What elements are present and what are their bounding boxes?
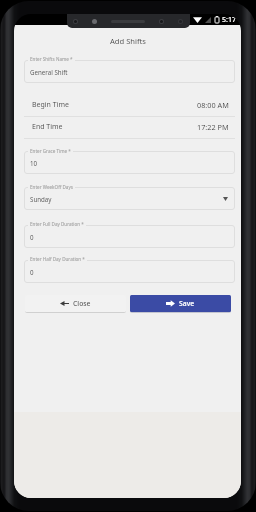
staticText: End Time	[32, 122, 63, 132]
staticText: 17:22 PM	[197, 122, 229, 132]
button[interactable]: Sunday	[24, 187, 235, 210]
staticText: 10	[30, 159, 38, 167]
staticText: Enter WeekOff Days	[30, 184, 73, 190]
staticText: Enter Shifts Name *	[30, 56, 73, 62]
button[interactable]: General Shift	[24, 60, 235, 83]
button[interactable]: 0	[24, 260, 235, 283]
button[interactable]: 10	[24, 151, 235, 174]
staticText: Sunday	[30, 195, 52, 203]
staticText: Enter Grace Time *	[30, 148, 71, 154]
staticText: Close	[73, 299, 91, 308]
staticText: 0	[30, 268, 34, 276]
button[interactable]: End Time	[24, 115, 235, 139]
staticText: Enter Full Day Duration *	[30, 221, 84, 227]
staticText: Save	[179, 299, 195, 308]
button[interactable]: Close	[25, 295, 126, 312]
staticText: Enter Half Day Duration *	[30, 256, 85, 262]
staticText: 08:00 AM	[197, 100, 229, 110]
button[interactable]: 0	[24, 225, 235, 248]
staticText: Begin Time	[32, 100, 69, 110]
button[interactable]: Begin Time	[24, 93, 235, 117]
staticText: 5:17	[222, 15, 236, 25]
staticText: General Shift	[30, 68, 68, 76]
staticText: 0	[30, 233, 34, 241]
staticText: Add Shifts	[110, 36, 146, 46]
button[interactable]: Save	[130, 295, 231, 312]
